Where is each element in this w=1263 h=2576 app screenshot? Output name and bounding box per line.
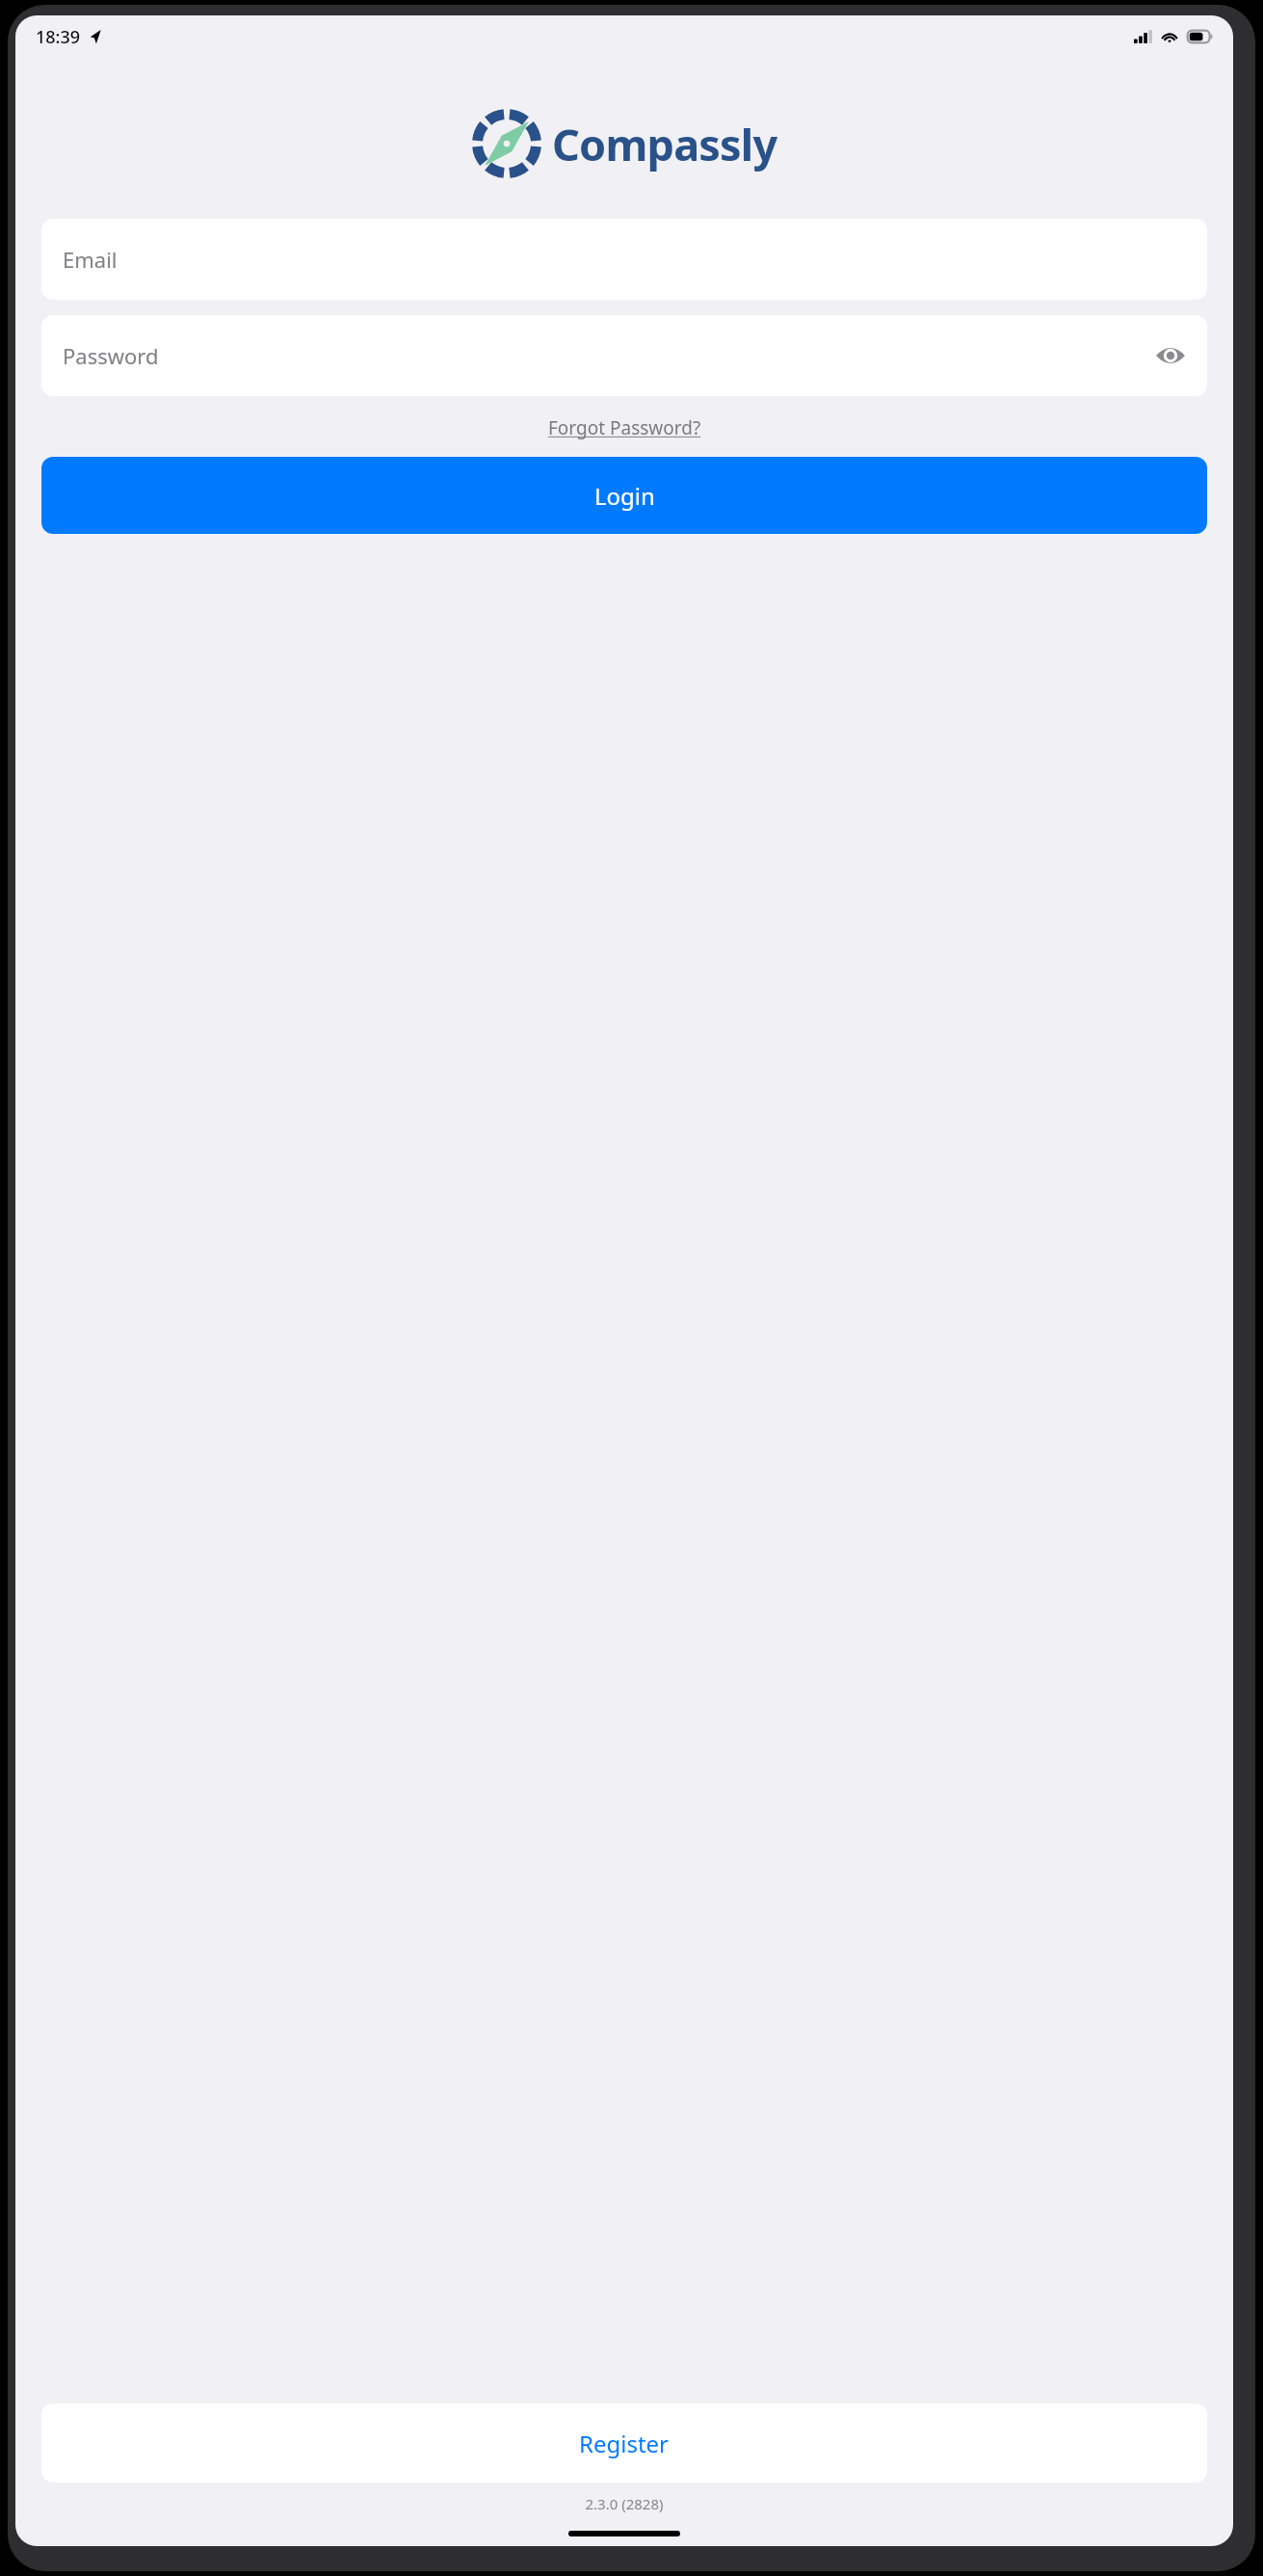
staticText: 18:39 [36, 25, 81, 49]
staticText: 2.3.0 (2828) [15, 2494, 1233, 2513]
staticText: Compassly [552, 115, 777, 173]
staticText: Register [579, 2428, 670, 2459]
button[interactable]: Forgot Password? [535, 404, 715, 452]
button[interactable]: Register [41, 2403, 1207, 2483]
button[interactable]: Login [41, 457, 1207, 534]
staticText: Forgot Password? [548, 415, 701, 440]
button[interactable]: Password [41, 315, 1207, 396]
staticText: Email [63, 245, 118, 274]
button[interactable]: Show password [1151, 336, 1190, 375]
staticText: Login [594, 480, 655, 512]
button[interactable]: Email [41, 219, 1207, 300]
staticText: Password [63, 341, 159, 370]
